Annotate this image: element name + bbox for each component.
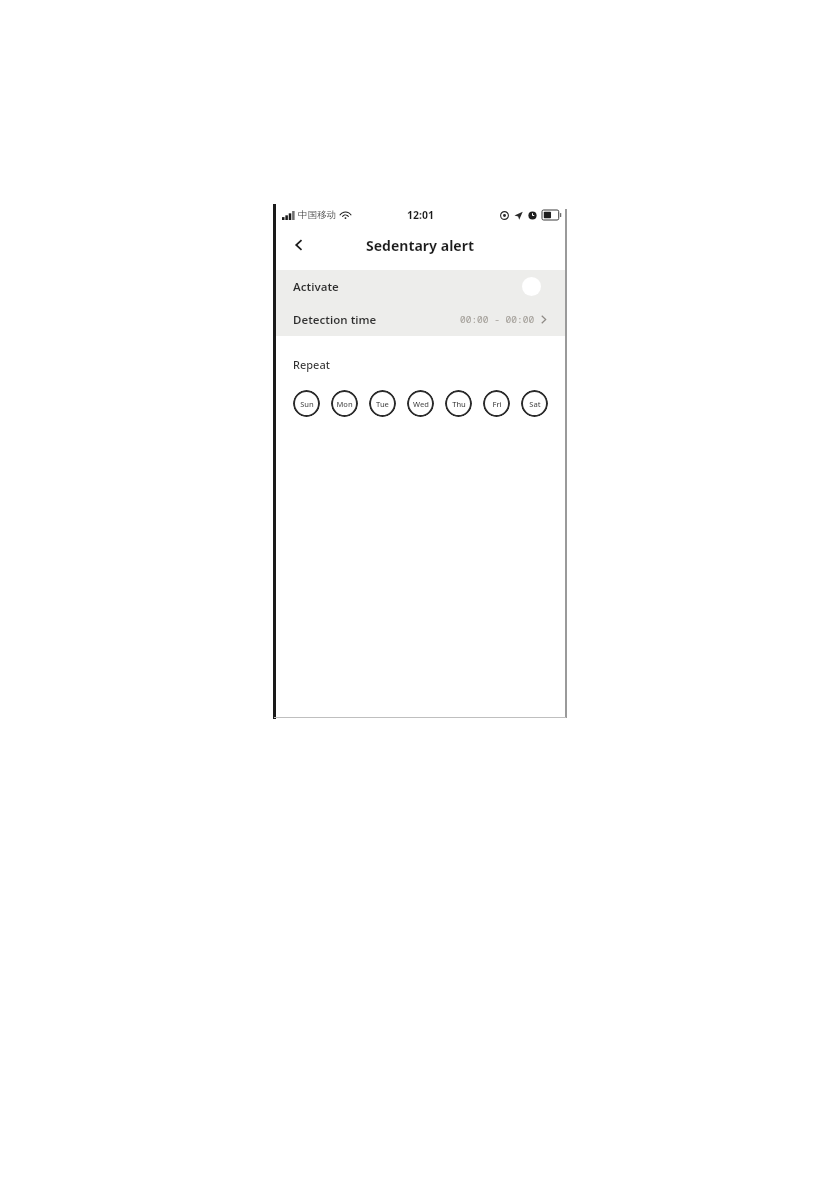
staticText: Detection time: [293, 312, 377, 328]
staticText: Sun: [300, 399, 314, 409]
staticText: Sat: [529, 399, 541, 409]
staticText: 中国移动: [298, 209, 336, 221]
button[interactable]: Back: [286, 232, 312, 258]
staticText: 12:01: [407, 208, 434, 222]
staticText: Repeat: [293, 357, 330, 372]
button[interactable]: Tue: [369, 390, 396, 417]
staticText: Tue: [376, 399, 389, 409]
button[interactable]: Thu: [445, 390, 472, 417]
staticText: Wed: [413, 399, 429, 409]
button[interactable]: Activate toggle: [522, 277, 541, 296]
button[interactable]: Mon: [331, 390, 358, 417]
button[interactable]: Wed: [407, 390, 434, 417]
staticText: Sedentary alert: [366, 236, 474, 255]
button[interactable]: Sat: [521, 390, 548, 417]
staticText: 00:00 - 00:00: [460, 313, 535, 326]
staticText: Activate: [293, 279, 339, 295]
button[interactable]: Fri: [483, 390, 510, 417]
staticText: Thu: [452, 399, 466, 409]
button[interactable]: Detection time: [274, 303, 566, 336]
button[interactable]: Activate: [274, 270, 566, 303]
button[interactable]: Sun: [293, 390, 320, 417]
staticText: Fri: [492, 399, 502, 409]
staticText: Mon: [336, 399, 353, 409]
